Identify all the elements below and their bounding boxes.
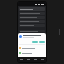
button[interactable] xyxy=(19,20,45,23)
button[interactable]: Profile xyxy=(39,57,46,62)
button[interactable] xyxy=(19,30,45,32)
button[interactable] xyxy=(19,34,45,39)
button[interactable] xyxy=(19,51,45,55)
button[interactable]: Search xyxy=(25,57,32,62)
button[interactable]: Home xyxy=(18,57,25,62)
button[interactable]: Saved xyxy=(32,57,39,62)
button[interactable] xyxy=(19,16,45,19)
button[interactable]: Decline xyxy=(39,41,45,43)
button[interactable]: Accept xyxy=(32,41,38,43)
button[interactable] xyxy=(19,24,45,27)
button[interactable] xyxy=(19,46,45,50)
button[interactable] xyxy=(19,7,45,11)
button[interactable] xyxy=(19,12,45,15)
